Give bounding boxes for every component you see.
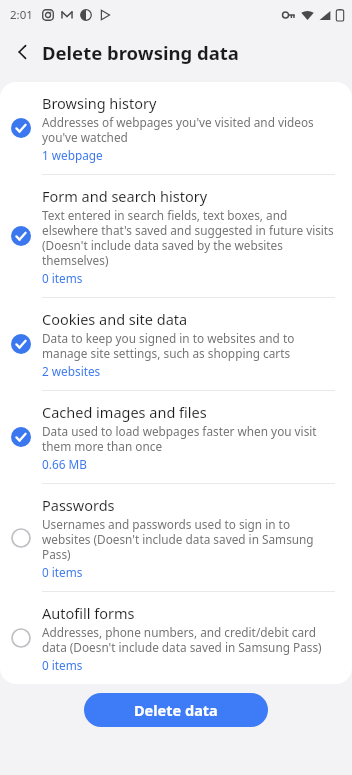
button[interactable]: Cached images and files bbox=[0, 391, 352, 484]
staticText: Data used to load webpages faster when y… bbox=[42, 423, 334, 455]
button[interactable]: Back bbox=[6, 35, 40, 69]
staticText: Browsing history bbox=[42, 93, 157, 113]
staticText: Passwords bbox=[42, 495, 115, 515]
button[interactable]: Cookies and site data bbox=[0, 298, 352, 391]
staticText: Form and search history bbox=[42, 186, 208, 206]
staticText: Addresses, phone numbers, and credit/deb… bbox=[42, 624, 334, 656]
staticText: 0.66 MB bbox=[42, 456, 87, 472]
staticText: 2 websites bbox=[42, 363, 101, 379]
staticText: Cached images and files bbox=[42, 402, 207, 422]
staticText: 0 items bbox=[42, 657, 83, 673]
staticText: Delete browsing data bbox=[42, 40, 239, 65]
staticText: Cookies and site data bbox=[42, 309, 188, 329]
button[interactable]: Form and search history bbox=[0, 175, 352, 298]
button[interactable]: Browsing history bbox=[0, 82, 352, 175]
staticText: 2:01 bbox=[10, 7, 33, 23]
staticText: 0 items bbox=[42, 270, 83, 286]
staticText: Usernames and passwords used to sign in … bbox=[42, 516, 334, 563]
staticText: Delete data bbox=[134, 700, 218, 720]
staticText: Autofill forms bbox=[42, 603, 135, 623]
staticText: Text entered in search fields, text boxe… bbox=[42, 207, 334, 269]
staticText: 1 webpage bbox=[42, 147, 103, 163]
button[interactable]: Delete data bbox=[84, 693, 268, 727]
staticText: 0 items bbox=[42, 564, 83, 580]
staticText: Addresses of webpages you've visited and… bbox=[42, 114, 334, 146]
staticText: Data to keep you signed in to websites a… bbox=[42, 330, 334, 362]
button[interactable]: Passwords bbox=[0, 484, 352, 592]
button[interactable]: Autofill forms bbox=[0, 592, 352, 684]
